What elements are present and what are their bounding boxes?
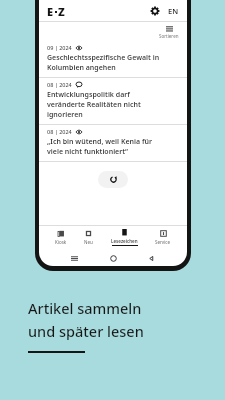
staticText: Artikel sammeln	[28, 298, 142, 318]
button[interactable]: Service	[153, 228, 173, 247]
staticText: Entwicklungspolitik darf	[47, 90, 130, 100]
button[interactable]: EN	[168, 6, 179, 16]
staticText: und später lesen	[28, 321, 144, 341]
staticText: Z	[58, 4, 65, 19]
button[interactable]: Sortieren	[159, 25, 179, 39]
staticText: veränderte Realitäten nicht	[47, 100, 141, 110]
staticText: Kiosk	[55, 239, 67, 245]
staticText: EN	[168, 6, 179, 16]
button[interactable]: 09 | 2024	[39, 41, 187, 77]
staticText: Geschlechtsspezifische Gewalt in	[47, 53, 160, 63]
staticText: 08 | 2024	[47, 128, 72, 135]
button[interactable]: Neu	[82, 228, 95, 247]
button[interactable]: Kiosk	[53, 228, 69, 247]
staticText: Service	[155, 239, 171, 245]
staticText: Kolumbien angehen	[47, 63, 116, 73]
staticText: Lesezeichen	[111, 238, 138, 244]
staticText: „Ich bin wütend, weil Kenia für	[47, 137, 152, 147]
staticText: 09 | 2024	[47, 44, 72, 51]
staticText: E	[47, 4, 54, 19]
button[interactable]: Einstellungen	[148, 4, 162, 18]
staticText: Sortieren	[159, 33, 179, 39]
staticText: Neu	[84, 239, 93, 245]
staticText: 08 | 2024	[47, 81, 72, 88]
button[interactable]: Lesezeichen	[109, 227, 140, 248]
staticText: ignorieren	[47, 110, 83, 120]
button[interactable]: 08 | 2024	[39, 78, 187, 124]
button[interactable]: 08 | 2024	[39, 125, 187, 161]
button[interactable]: Mehr laden	[98, 171, 128, 188]
staticText: viele nicht funktioniert“	[47, 147, 128, 157]
